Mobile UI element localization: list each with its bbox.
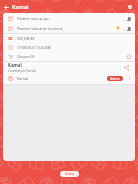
staticText: Admin — [110, 77, 120, 81]
staticText: Kamal — [8, 62, 22, 68]
staticText: Ukupno 00 — [17, 54, 35, 59]
button[interactable]: Share — [122, 63, 131, 72]
button[interactable]: Back — [1, 2, 11, 12]
staticText: Dodaj — [65, 172, 74, 176]
staticText: Kamal — [12, 3, 29, 10]
button[interactable]: Pametni izvlacenje do izrucia — [3, 23, 135, 33]
button[interactable]: 17/08/2023 10:43 AM — [3, 43, 135, 52]
button[interactable]: 905,698.88 — [3, 34, 135, 43]
button[interactable]: Dodaj — [60, 171, 79, 177]
staticText: Pardner nova grupe — [17, 16, 49, 21]
staticText: Pametni izvlacenje do izrucia — [17, 26, 63, 31]
button[interactable]: Ukupno 00 — [3, 52, 135, 61]
staticText: Created por Kamal — [8, 69, 36, 73]
button[interactable]: Admin — [107, 76, 123, 81]
button[interactable]: Toggle — [123, 16, 131, 21]
staticText: 905,698.88 — [17, 36, 35, 41]
button[interactable]: Pardner nova grupe — [3, 13, 135, 23]
button[interactable]: Toggle — [123, 26, 131, 31]
button[interactable]: Kamal — [3, 73, 135, 84]
staticText: Kamal — [17, 76, 29, 81]
staticText: 17/08/2023 10:43 AM — [17, 45, 51, 50]
button[interactable]: Info — [125, 53, 132, 60]
button[interactable]: Info — [125, 2, 135, 12]
button[interactable]: More — [126, 75, 133, 82]
